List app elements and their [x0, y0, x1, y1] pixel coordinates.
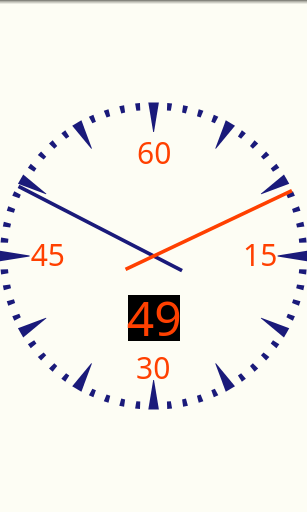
- button[interactable]: Seconds 49: [128, 295, 180, 341]
- button[interactable]: Clock face: [0, 0, 307, 512]
